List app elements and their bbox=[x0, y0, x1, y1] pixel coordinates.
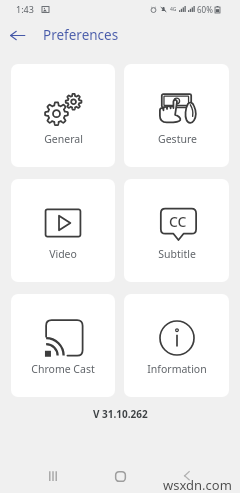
staticText: Gesture bbox=[158, 132, 197, 146]
button[interactable]: Chrome Cast bbox=[11, 294, 115, 397]
button[interactable]: Home bbox=[103, 459, 137, 493]
staticText: General bbox=[44, 132, 83, 146]
staticText: wsxdn.com bbox=[163, 476, 232, 493]
button[interactable]: General bbox=[11, 64, 115, 167]
staticText: Video bbox=[49, 247, 77, 261]
staticText: 60% bbox=[197, 4, 213, 15]
button[interactable]: Video bbox=[11, 179, 115, 282]
staticText: V 31.10.262 bbox=[93, 407, 148, 421]
staticText: Chrome Cast bbox=[31, 362, 95, 376]
button[interactable]: CC bbox=[124, 179, 229, 282]
staticText: 1:43 bbox=[16, 3, 34, 15]
button[interactable]: Back bbox=[0, 18, 34, 52]
staticText: 4G bbox=[170, 6, 177, 13]
staticText: CC bbox=[169, 212, 187, 231]
button[interactable]: Recent apps bbox=[36, 459, 70, 493]
staticText: Information bbox=[147, 362, 207, 376]
staticText: Preferences bbox=[43, 26, 119, 44]
staticText: Subtitle bbox=[158, 247, 196, 261]
button[interactable]: Gesture bbox=[124, 64, 229, 167]
button[interactable]: Information bbox=[124, 294, 229, 397]
button[interactable]: Back bbox=[170, 459, 204, 493]
